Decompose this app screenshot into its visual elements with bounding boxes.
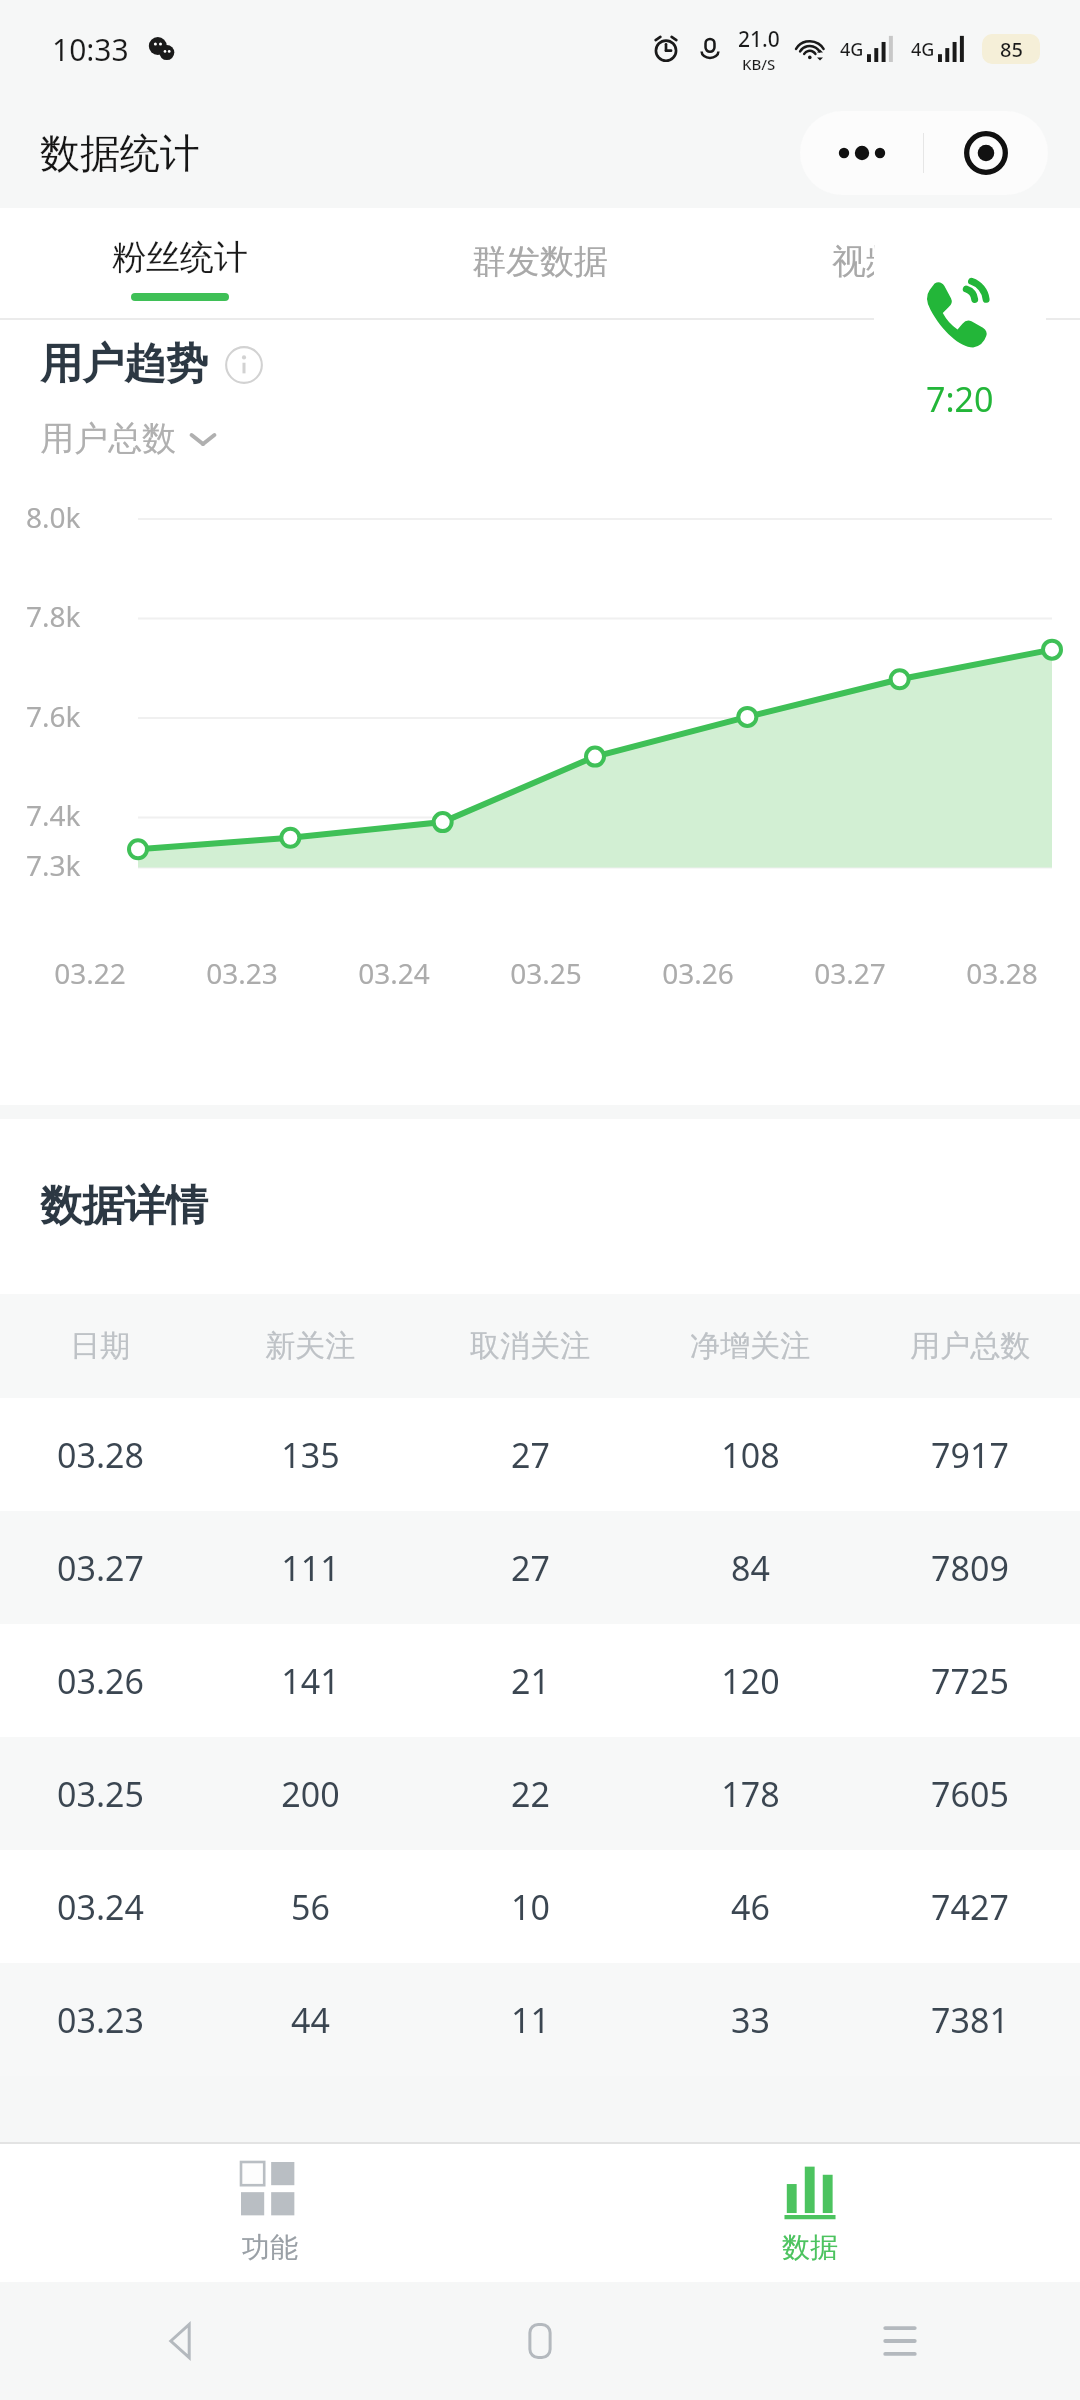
staticText: 7.6k [26, 697, 81, 735]
staticText: 03.26 [662, 954, 734, 992]
staticText: 03.22 [54, 954, 126, 992]
staticText: 7725 [931, 1658, 1009, 1704]
button[interactable]: 03.24 [0, 1850, 1080, 1963]
staticText: 21.0 [738, 25, 780, 54]
staticText: 108 [721, 1432, 780, 1478]
staticText: 7.4k [26, 796, 81, 834]
button[interactable]: 03.28 [0, 1398, 1080, 1511]
staticText: 111 [281, 1545, 340, 1591]
staticText: 数据详情 [40, 1180, 208, 1233]
button[interactable]: Close [924, 111, 1048, 195]
staticText: 03.23 [57, 1997, 144, 2043]
staticText: 03.28 [57, 1432, 144, 1478]
button[interactable]: 功能 [0, 2144, 540, 2282]
staticText: 11 [511, 1997, 550, 2043]
button[interactable]: Ongoing call 7:20 [874, 236, 1046, 458]
staticText: 7917 [931, 1432, 1009, 1478]
staticText: 03.28 [966, 954, 1038, 992]
button[interactable]: 用户总数 [40, 417, 218, 460]
staticText: 7605 [931, 1771, 1009, 1817]
staticText: 03.23 [206, 954, 278, 992]
staticText: 用户总数 [910, 1327, 1030, 1365]
button[interactable]: 视频数据 [720, 208, 1080, 320]
staticText: 10:33 [52, 29, 129, 70]
staticText: 数据 [782, 2230, 838, 2265]
button[interactable]: 03.23 [0, 1963, 1080, 2076]
staticText: 120 [721, 1658, 780, 1704]
staticText: 178 [721, 1771, 780, 1817]
staticText: 84 [731, 1545, 770, 1591]
staticText: 33 [731, 1997, 770, 2043]
button[interactable]: More [800, 111, 923, 195]
staticText: 数据统计 [40, 128, 200, 178]
staticText: 4G [911, 37, 935, 62]
staticText: 135 [281, 1432, 340, 1478]
staticText: KB/S [742, 54, 776, 74]
staticText: 群发数据 [472, 240, 608, 283]
staticText: 视频数据 [832, 240, 968, 283]
button[interactable]: Info [224, 345, 264, 385]
staticText: 7381 [931, 1997, 1009, 2043]
staticText: 141 [281, 1658, 340, 1704]
staticText: 净增关注 [690, 1327, 810, 1365]
staticText: 粉丝统计 [112, 236, 248, 279]
staticText: 27 [511, 1432, 550, 1478]
staticText: 03.24 [358, 954, 430, 992]
staticText: 功能 [242, 2230, 298, 2265]
button[interactable]: Recents [720, 2282, 1080, 2400]
button[interactable]: 03.26 [0, 1624, 1080, 1737]
staticText: 7.8k [26, 597, 81, 635]
staticText: 03.25 [510, 954, 582, 992]
staticText: 7:20 [926, 376, 994, 422]
staticText: 27 [511, 1545, 550, 1591]
staticText: 03.27 [57, 1545, 144, 1591]
button[interactable]: Back [0, 2282, 360, 2400]
staticText: 7809 [931, 1545, 1009, 1591]
staticText: 85 [1000, 36, 1023, 63]
staticText: 用户总数 [40, 417, 176, 460]
staticText: 21 [511, 1658, 550, 1704]
staticText: 取消关注 [470, 1327, 590, 1365]
button[interactable]: 03.27 [0, 1511, 1080, 1624]
staticText: 03.26 [57, 1658, 144, 1704]
staticText: 10 [511, 1884, 550, 1930]
staticText: 7427 [931, 1884, 1009, 1930]
staticText: 44 [291, 1997, 330, 2043]
staticText: 4G [840, 37, 864, 62]
staticText: 用户趋势 [40, 338, 208, 391]
staticText: 日期 [70, 1327, 130, 1365]
staticText: 新关注 [265, 1327, 355, 1365]
staticText: 03.27 [814, 954, 886, 992]
button[interactable]: 粉丝统计 [0, 208, 360, 320]
staticText: 200 [281, 1771, 340, 1817]
staticText: 22 [511, 1771, 550, 1817]
button[interactable]: 03.25 [0, 1737, 1080, 1850]
staticText: 56 [291, 1884, 330, 1930]
staticText: 7.3k [26, 846, 81, 884]
staticText: 03.24 [57, 1884, 144, 1930]
staticText: 8.0k [26, 498, 81, 536]
staticText: 03.25 [57, 1771, 144, 1817]
button[interactable]: 群发数据 [360, 208, 720, 320]
staticText: 46 [731, 1884, 770, 1930]
button[interactable]: Home [360, 2282, 720, 2400]
button[interactable]: 数据 [540, 2144, 1080, 2282]
